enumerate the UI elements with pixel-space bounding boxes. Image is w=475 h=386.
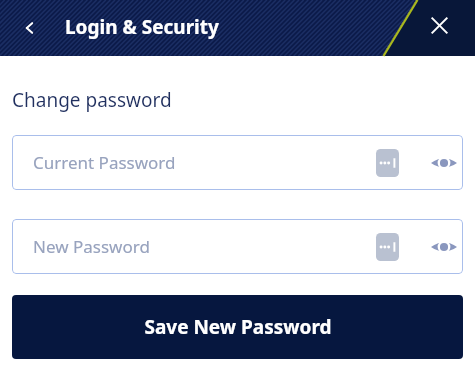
button[interactable]: Use saved password bbox=[371, 228, 403, 266]
button[interactable]: Close bbox=[421, 7, 457, 43]
button[interactable]: Show password bbox=[425, 144, 463, 182]
button[interactable]: Use saved password bbox=[371, 144, 403, 182]
staticText: Save New Password bbox=[144, 314, 332, 340]
button[interactable]: Current Password bbox=[12, 135, 463, 190]
staticText: Login & Security bbox=[65, 14, 219, 40]
button[interactable]: Back bbox=[12, 10, 48, 46]
button[interactable]: Save New Password bbox=[12, 295, 463, 359]
staticText: New Password bbox=[33, 235, 371, 258]
button[interactable]: New Password bbox=[12, 219, 463, 274]
staticText: Change password bbox=[12, 87, 172, 113]
staticText: Current Password bbox=[33, 151, 371, 174]
button[interactable]: Show password bbox=[425, 228, 463, 266]
